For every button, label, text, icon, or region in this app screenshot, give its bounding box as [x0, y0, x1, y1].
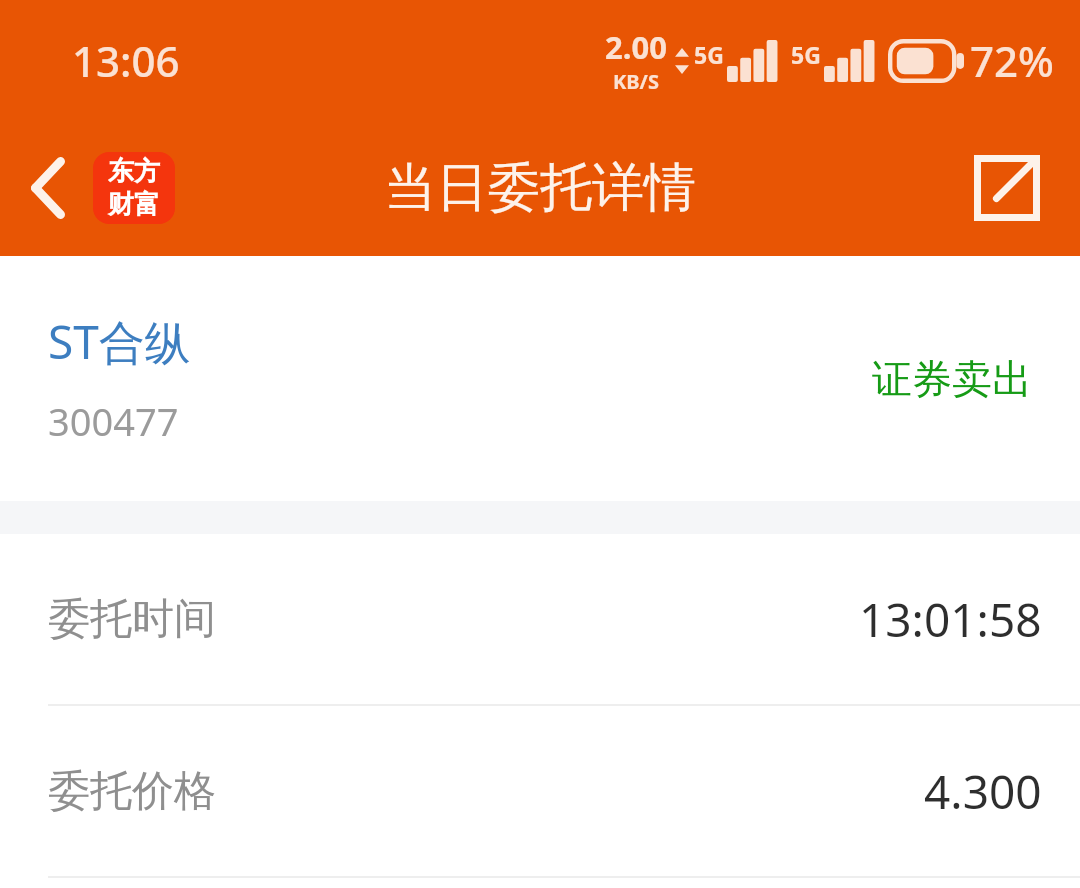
staticText: 300477 [48, 395, 179, 447]
button[interactable]: Share [962, 143, 1052, 233]
staticText: 当日委托详情 [384, 155, 696, 221]
button[interactable]: 委托价格 [0, 706, 1080, 878]
staticText: 5G [694, 39, 724, 70]
staticText: KB/S [613, 68, 659, 95]
staticText: 4.300 [924, 760, 1042, 823]
staticText: 13:01:58 [859, 588, 1042, 651]
staticText: 13:06 [72, 32, 180, 89]
staticText: ST合纵 [48, 310, 191, 373]
staticText: 5G [791, 39, 821, 70]
staticText: 委托价格 [48, 765, 216, 818]
staticText: 72% [970, 32, 1054, 89]
staticText: 委托时间 [48, 593, 216, 646]
staticText: 2.00 [605, 26, 667, 68]
button[interactable]: 委托时间 [0, 534, 1080, 706]
staticText: 证券卖出 [872, 354, 1032, 404]
button[interactable]: Back [0, 140, 96, 236]
staticText: 财富 [108, 188, 160, 221]
staticText: 东方 [108, 155, 160, 188]
